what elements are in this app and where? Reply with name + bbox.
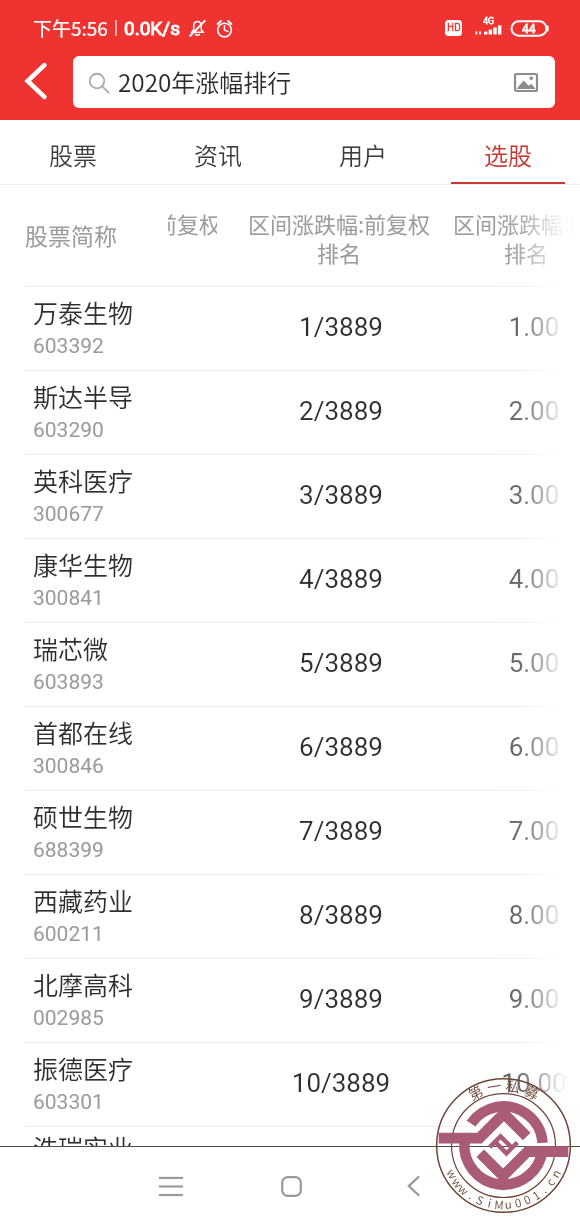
staticText: 4.00 xyxy=(443,564,580,594)
staticText: 002985 xyxy=(33,1006,104,1031)
button[interactable]: Back xyxy=(385,1158,441,1214)
button[interactable]: 北摩高科 xyxy=(0,959,580,1043)
staticText: 2020年涨幅排行 xyxy=(118,64,292,99)
button[interactable]: Image search xyxy=(512,68,540,96)
staticText: 首都在线 xyxy=(33,714,134,750)
staticText: 9.00 xyxy=(443,984,580,1014)
staticText: 1.00 xyxy=(443,312,580,342)
staticText: 5/3889 xyxy=(250,648,432,678)
staticText: 斯达半导 xyxy=(33,378,134,414)
staticText: 8.00 xyxy=(443,900,580,930)
staticText: 9/3889 xyxy=(250,984,432,1014)
staticText: 北摩高科 xyxy=(33,966,134,1002)
staticText: 8/3889 xyxy=(250,900,432,930)
staticText: 1/3889 xyxy=(250,312,432,342)
staticText: 排名 xyxy=(504,236,549,268)
staticText: 6.00 xyxy=(443,732,580,762)
staticText: 5.00 xyxy=(443,648,580,678)
button[interactable]: 斯达半导 xyxy=(0,371,580,455)
button[interactable]: 用户 xyxy=(290,120,435,185)
staticText: 选股 xyxy=(484,137,532,172)
staticText: 10.00 xyxy=(443,1068,580,1098)
staticText: 10/3889 xyxy=(250,1068,432,1098)
staticText: 2/3889 xyxy=(250,396,432,426)
staticText: 4/3889 xyxy=(250,564,432,594)
staticText: 44 xyxy=(522,22,536,36)
staticText: 603893 xyxy=(33,670,104,695)
button[interactable]: 万泰生物 xyxy=(0,287,580,371)
staticText: 排名 xyxy=(248,236,430,268)
staticText: 硕世生物 xyxy=(33,798,134,834)
staticText: 3/3889 xyxy=(250,480,432,510)
button[interactable]: 2020年涨幅排行 xyxy=(73,56,555,108)
staticText: 下午5:56 xyxy=(33,14,108,42)
staticText: 300846 xyxy=(33,754,104,779)
staticText: 用户 xyxy=(339,137,387,172)
button[interactable]: 股票 xyxy=(0,120,145,185)
staticText: 英科医疗 xyxy=(33,462,134,498)
button[interactable]: Home xyxy=(263,1158,319,1214)
staticText: 区间涨跌幅:前复权 xyxy=(453,207,580,239)
button[interactable]: Back xyxy=(6,51,66,111)
staticText: 603290 xyxy=(33,418,104,443)
staticText: 前复权 xyxy=(168,207,217,239)
staticText: 7.00 xyxy=(443,816,580,846)
staticText: 688399 xyxy=(33,838,104,863)
staticText: 4G xyxy=(483,16,495,27)
button[interactable]: 瑞芯微 xyxy=(0,623,580,707)
staticText: 300841 xyxy=(33,586,104,611)
button[interactable]: 振德医疗 xyxy=(0,1043,580,1127)
button[interactable]: 资讯 xyxy=(145,120,290,185)
button[interactable]: 首都在线 xyxy=(0,707,580,791)
button[interactable]: 选股 xyxy=(435,120,580,185)
staticText: HD xyxy=(447,22,461,34)
staticText: 万泰生物 xyxy=(33,294,134,330)
button[interactable]: 康华生物 xyxy=(0,539,580,623)
button[interactable]: 硕世生物 xyxy=(0,791,580,875)
staticText: 603392 xyxy=(33,334,104,359)
staticText: 振德医疗 xyxy=(33,1050,134,1086)
staticText: 股票简称 xyxy=(25,218,117,251)
staticText: 603301 xyxy=(33,1090,104,1115)
button[interactable]: 英科医疗 xyxy=(0,455,580,539)
staticText: 600211 xyxy=(33,922,104,947)
staticText: 2.00 xyxy=(443,396,580,426)
staticText: 7/3889 xyxy=(250,816,432,846)
staticText: 0.0K/s xyxy=(124,17,180,39)
button[interactable]: Recent apps xyxy=(143,1158,199,1214)
staticText: 股票 xyxy=(49,137,97,172)
staticText: 6/3889 xyxy=(250,732,432,762)
staticText: 300677 xyxy=(33,502,104,527)
staticText: 区间涨跌幅:前复权 xyxy=(248,207,431,239)
staticText: 浩瑞实业 xyxy=(33,1129,134,1153)
staticText: 3.00 xyxy=(443,480,580,510)
staticText: 瑞芯微 xyxy=(33,630,109,666)
staticText: 资讯 xyxy=(194,137,242,172)
staticText: 西藏药业 xyxy=(33,882,134,918)
button[interactable]: 西藏药业 xyxy=(0,875,580,959)
staticText: 康华生物 xyxy=(33,546,134,582)
